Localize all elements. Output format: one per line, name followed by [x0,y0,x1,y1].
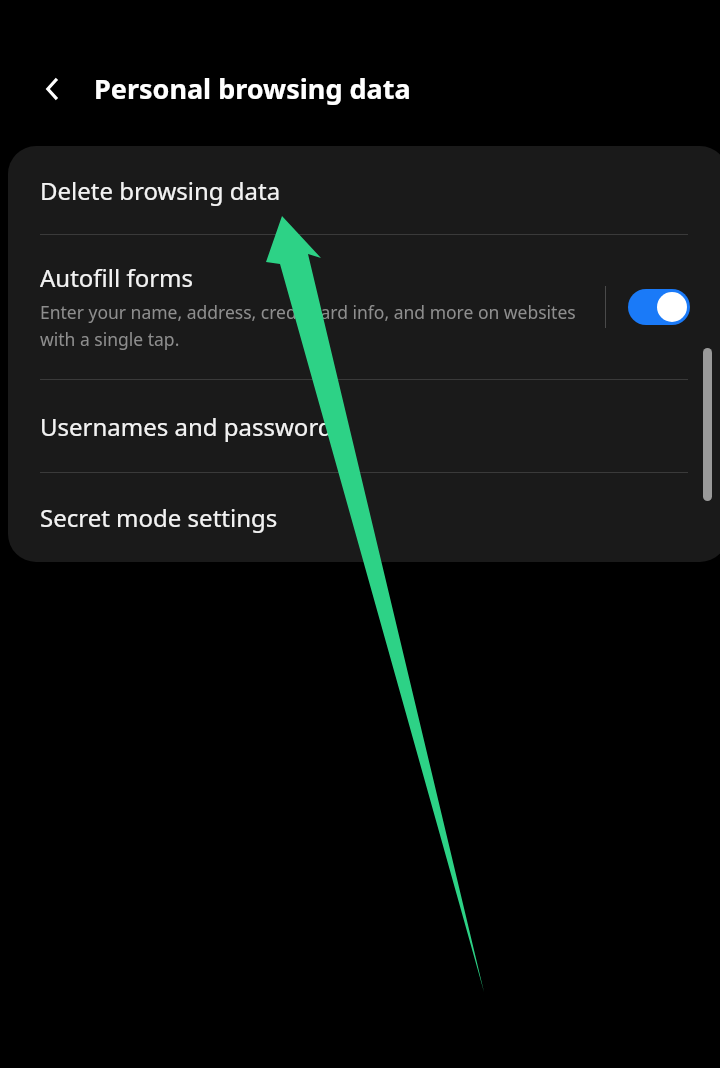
button[interactable]: Back [28,65,76,113]
staticText: Autofill forms [40,261,194,294]
button[interactable]: Delete browsing data [8,146,720,234]
staticText: Usernames and passwords [40,410,345,443]
staticText: Enter your name, address, credit card in… [40,300,608,351]
staticText: Personal browsing data [94,70,411,107]
staticText: Secret mode settings [40,501,278,534]
staticText: Delete browsing data [40,174,281,207]
button[interactable]: Autofill forms [8,235,608,379]
button[interactable]: Autofill forms toggle, on [620,273,698,341]
button[interactable]: Secret mode settings [8,473,720,562]
button[interactable]: Usernames and passwords [8,380,720,472]
